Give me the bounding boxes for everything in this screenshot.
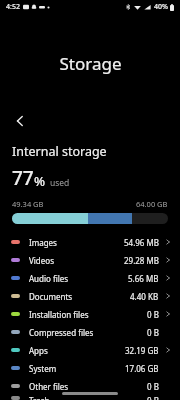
staticText: Trash bbox=[29, 395, 50, 400]
button[interactable]: Images bbox=[0, 233, 180, 251]
staticText: 77 bbox=[12, 165, 34, 191]
staticText: Apps bbox=[29, 345, 48, 356]
staticText: 54.96 MB bbox=[124, 237, 159, 248]
staticText: Audio files bbox=[29, 273, 69, 284]
staticText: 5.66 MB bbox=[128, 273, 159, 284]
button[interactable]: Other files bbox=[0, 377, 180, 395]
staticText: 0 B bbox=[147, 327, 159, 338]
button[interactable]: Back bbox=[4, 105, 36, 137]
staticText: 0 B bbox=[147, 381, 159, 392]
button[interactable]: Videos bbox=[0, 251, 180, 269]
staticText: 0 B bbox=[147, 309, 159, 320]
staticText: Storage bbox=[59, 52, 122, 75]
staticText: Compressed files bbox=[29, 327, 94, 338]
staticText: Documents bbox=[29, 291, 73, 302]
staticText: 0 B bbox=[147, 395, 159, 400]
staticText: Other files bbox=[29, 381, 69, 392]
staticText: Internal storage bbox=[12, 143, 107, 160]
button[interactable]: System bbox=[0, 359, 180, 377]
staticText: 4:52 bbox=[6, 2, 20, 12]
button[interactable]: Audio files bbox=[0, 269, 180, 287]
button[interactable]: Documents bbox=[0, 287, 180, 305]
staticText: Installation files bbox=[29, 309, 89, 320]
staticText: 40% bbox=[154, 2, 168, 12]
button[interactable]: Compressed files bbox=[0, 323, 180, 341]
button[interactable]: Trash bbox=[0, 395, 180, 400]
staticText: 49.34 GB bbox=[12, 199, 44, 209]
staticText: used bbox=[50, 177, 70, 189]
staticText: 64.00 GB bbox=[136, 199, 168, 209]
button[interactable]: Installation files bbox=[0, 305, 180, 323]
staticText: System bbox=[29, 363, 57, 374]
staticText: 4.40 KB bbox=[130, 291, 159, 302]
staticText: % bbox=[34, 172, 46, 190]
button[interactable]: Apps bbox=[0, 341, 180, 359]
staticText: Images bbox=[29, 237, 57, 248]
staticText: 29.28 MB bbox=[124, 255, 159, 266]
staticText: 17.06 GB bbox=[125, 363, 159, 374]
staticText: Videos bbox=[29, 255, 54, 266]
staticText: 32.19 GB bbox=[125, 345, 159, 356]
